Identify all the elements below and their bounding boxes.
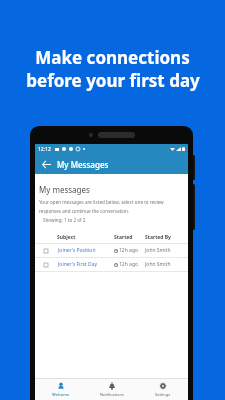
button[interactable]: Joiner's Position [35,244,188,257]
staticText: 12h ago [119,247,139,254]
staticText: Notifications [100,392,124,397]
staticText: Make connections [35,46,190,69]
staticText: Subject [57,234,76,241]
staticText: 12:12 [38,146,51,153]
staticText: Started By [145,234,171,241]
button[interactable]: Joiner's First Day [35,258,188,271]
staticText: John Smith [145,247,171,254]
staticText: Joiner's First Day [58,261,97,268]
staticText: 12h ago [119,261,139,268]
staticText: Showing: 1 to 2 of 2 [43,217,86,223]
staticText: Your open messages are listed below, sel… [39,199,164,205]
button[interactable]: Notifications [86,382,137,397]
staticText: responses and continue the conversation. [39,208,130,214]
button[interactable]: Back [40,158,53,171]
staticText: before your first day [26,69,200,92]
button[interactable]: Welcome [35,382,86,397]
button[interactable]: Settings [137,382,188,397]
staticText: John Smith [145,261,171,268]
staticText: My messages [39,184,90,195]
staticText: My Messages [57,159,109,170]
staticText: Welcome [52,392,70,397]
staticText: Joiner's Position [58,247,96,254]
staticText: Started [114,234,133,241]
staticText: Settings [155,392,171,397]
